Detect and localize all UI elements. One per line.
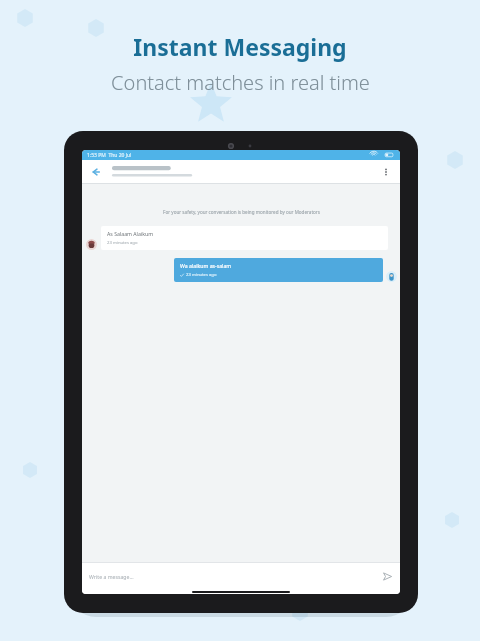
button[interactable]: Wa alaikum as-salam: [174, 258, 383, 282]
staticText: Wa alaikum as-salam: [180, 262, 232, 269]
staticText: Write a message...: [89, 573, 134, 580]
staticText: 1:53 PM Thu 20 Jul: [87, 152, 132, 159]
staticText: As Salaam Alaikum: [107, 230, 153, 237]
staticText: Contact matches in real time: [111, 69, 370, 96]
button[interactable]: Back: [89, 165, 103, 179]
button[interactable]: More options: [379, 165, 393, 179]
button[interactable]: Send: [381, 570, 393, 582]
staticText: For your safety, your conversation is be…: [163, 209, 320, 215]
staticText: 23 minutes ago: [186, 272, 217, 278]
button[interactable]: Write a message...: [82, 563, 400, 589]
staticText: 23 minutes ago: [107, 240, 138, 246]
button[interactable]: As Salaam Alaikum: [101, 226, 388, 250]
staticText: Instant Messaging: [133, 31, 347, 62]
button[interactable]: [112, 166, 379, 178]
